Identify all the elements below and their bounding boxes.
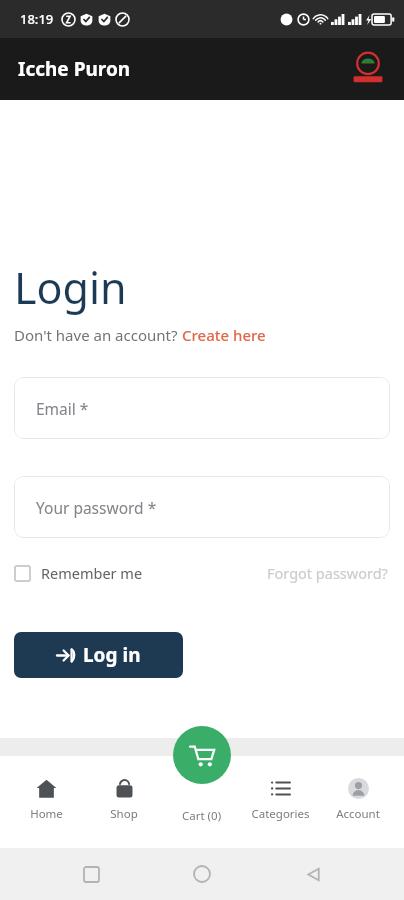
button[interactable]: Cart (0) xyxy=(170,778,234,824)
staticText: Don't have an account? xyxy=(14,325,182,345)
staticText: Remember me xyxy=(41,563,143,583)
staticText: Icche Puron xyxy=(18,56,131,82)
button[interactable]: Icche Puron logo xyxy=(348,49,388,89)
button[interactable]: Create here xyxy=(182,325,266,345)
button[interactable]: Back xyxy=(293,854,333,894)
button[interactable]: Forgot password? xyxy=(267,563,388,583)
button[interactable]: Log in xyxy=(14,632,183,678)
staticText: Account xyxy=(336,806,380,822)
staticText: Email * xyxy=(36,398,89,419)
staticText: Forgot password? xyxy=(267,563,388,583)
staticText: Create here xyxy=(182,325,266,345)
staticText: Home xyxy=(30,806,63,822)
staticText: 18:19 xyxy=(20,10,54,28)
button[interactable]: Your password * xyxy=(14,476,390,538)
staticText: Log in xyxy=(83,642,141,668)
button[interactable]: Recent apps xyxy=(71,854,111,894)
staticText: Shop xyxy=(110,806,138,822)
staticText: Cart (0) xyxy=(182,808,222,824)
button[interactable]: Shop xyxy=(92,778,156,822)
button[interactable]: Cart xyxy=(173,726,231,784)
staticText: Categories xyxy=(251,806,310,822)
staticText: Login xyxy=(14,258,127,317)
button[interactable]: Home xyxy=(14,778,78,822)
button[interactable]: Home xyxy=(182,854,222,894)
button[interactable]: Remember me xyxy=(14,563,143,583)
staticText: Your password * xyxy=(36,497,157,518)
button[interactable]: Categories xyxy=(248,778,312,822)
button[interactable]: Account xyxy=(326,778,390,822)
button[interactable]: Email * xyxy=(14,377,390,439)
